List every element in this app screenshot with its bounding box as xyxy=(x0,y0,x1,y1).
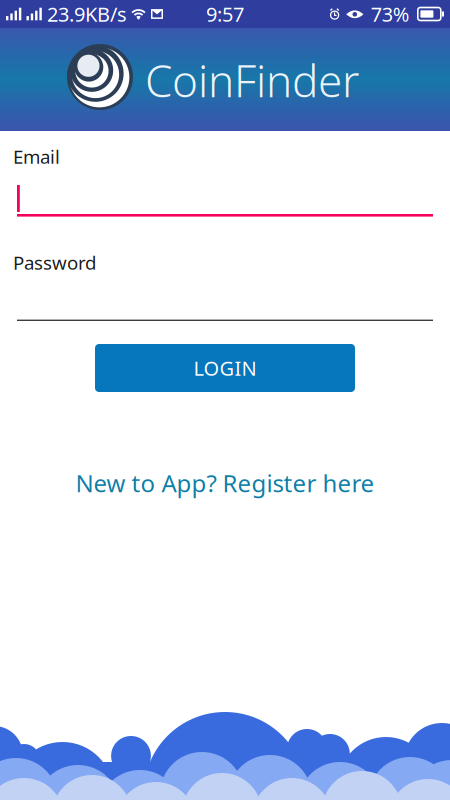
staticText: New to App? Register here xyxy=(75,467,374,499)
staticText: LOGIN xyxy=(193,355,256,381)
button[interactable]: LOGIN xyxy=(95,344,355,392)
staticText: Email xyxy=(13,144,60,169)
staticText: 9:57 xyxy=(206,1,244,27)
staticText: 73% xyxy=(371,1,410,27)
staticText: CoinFinder xyxy=(145,51,359,109)
button[interactable]: New to App? Register here xyxy=(60,462,390,504)
staticText: Password xyxy=(13,250,96,275)
staticText: 23.9KB/s xyxy=(47,1,127,27)
